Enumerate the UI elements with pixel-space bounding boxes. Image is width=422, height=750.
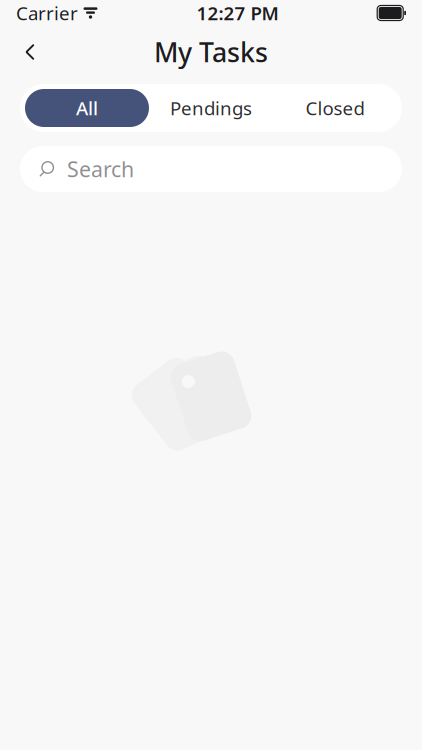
staticText: Closed [305, 96, 364, 120]
button[interactable]: Pendings [149, 89, 273, 127]
staticText: My Tasks [154, 34, 268, 70]
staticText: All [76, 96, 98, 120]
staticText: Pendings [170, 96, 252, 120]
staticText: Search [67, 155, 134, 183]
button[interactable]: Closed [273, 89, 397, 127]
staticText: Carrier [16, 1, 78, 25]
button[interactable]: All [25, 89, 149, 127]
button[interactable]: Search [20, 146, 402, 192]
staticText: 12:27 PM [197, 1, 279, 25]
button[interactable]: Back [8, 30, 52, 74]
